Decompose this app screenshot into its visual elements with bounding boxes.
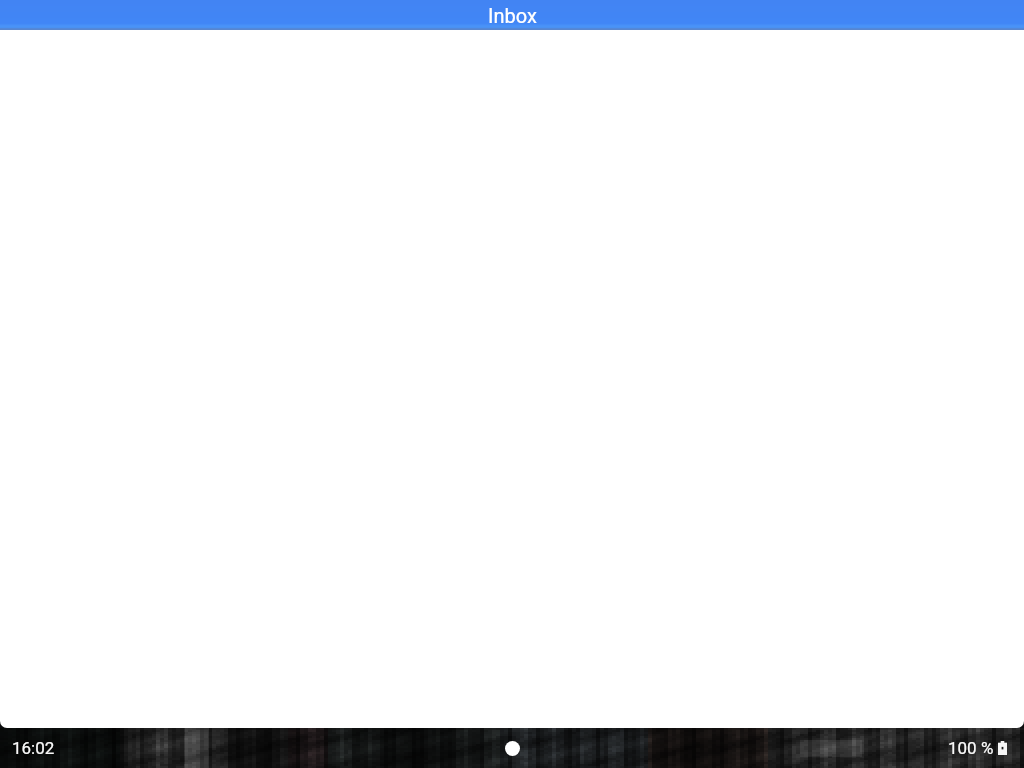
staticText: Inbox xyxy=(488,4,537,27)
staticText: 16:02 xyxy=(12,738,55,758)
button[interactable]: Inbox xyxy=(0,0,1024,30)
staticText: 100 % xyxy=(948,738,994,758)
button[interactable]: Home xyxy=(505,741,520,756)
